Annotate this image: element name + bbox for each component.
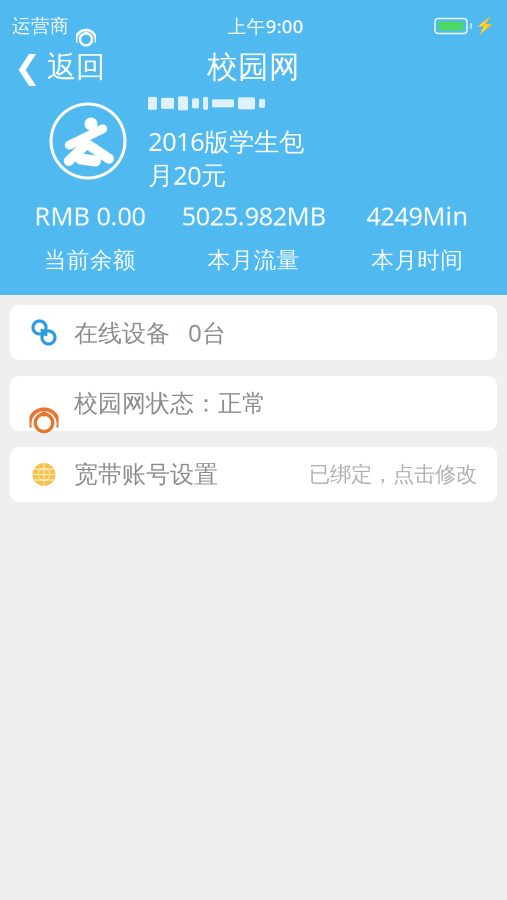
button[interactable]: ❮	[0, 43, 117, 91]
staticText: 校园网状态：正常	[74, 389, 266, 418]
staticText: 本月流量	[207, 246, 299, 274]
staticText: 返回	[47, 49, 105, 85]
staticText: 已绑定，点击修改	[309, 461, 477, 488]
button[interactable]: 宽带账号设置	[10, 447, 497, 502]
staticText: RMB 0.00	[34, 199, 145, 232]
staticText: ⚡	[475, 17, 495, 35]
staticText: ❮	[14, 49, 41, 85]
staticText: 5025.982MB	[181, 199, 325, 232]
button[interactable]: 校园网状态：正常	[10, 376, 497, 431]
staticText: 本月时间	[371, 246, 463, 274]
button[interactable]: 在线设备 0台	[10, 305, 497, 360]
staticText: 上午9:00	[227, 14, 303, 38]
staticText: 宽带账号设置	[74, 460, 218, 489]
staticText: 4249Min	[366, 199, 468, 232]
staticText: 校园网	[207, 48, 300, 86]
staticText: 2016版学生包月20元	[148, 124, 304, 192]
staticText: 在线设备 0台	[74, 317, 226, 348]
staticText: 当前余额	[44, 246, 136, 274]
staticText: 运营商	[12, 14, 69, 37]
